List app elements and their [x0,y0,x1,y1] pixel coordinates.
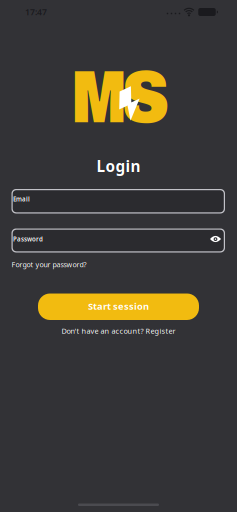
button[interactable]: Start session [38,293,199,320]
staticText: S [121,57,169,138]
button[interactable]: Show password [209,235,221,243]
button[interactable]: Forgot your password? [11,260,86,269]
button[interactable]: Password [0,228,237,252]
staticText: Email [13,195,30,203]
staticText: Login [96,156,140,176]
staticText: M [71,57,126,138]
staticText: Forgot your password? [11,260,86,269]
staticText: Start session [88,300,149,313]
staticText: Password [13,235,43,243]
button[interactable]: Email [0,189,237,213]
staticText: 17:47 [25,6,47,18]
staticText: Don't have an account? Register [61,326,175,336]
button[interactable]: Don't have an account? Register [61,326,175,336]
